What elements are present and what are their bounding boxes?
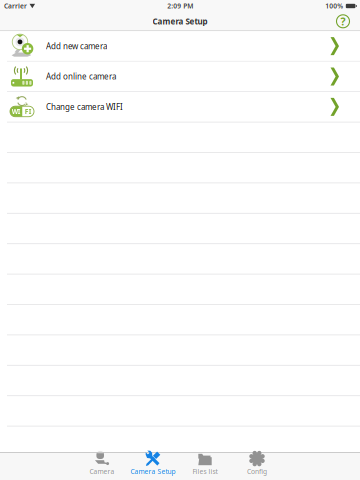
button[interactable]: Files list xyxy=(179,453,231,480)
staticText: 100% xyxy=(325,2,343,10)
button[interactable]: Help xyxy=(333,12,353,31)
button[interactable]: Camera xyxy=(77,453,127,480)
staticText: Files list xyxy=(192,467,217,476)
staticText: Config xyxy=(247,467,267,476)
staticText: FI xyxy=(25,107,32,116)
staticText: ? xyxy=(340,14,345,28)
button[interactable]: Camera Setup xyxy=(127,453,179,480)
staticText: WI xyxy=(12,107,21,116)
button[interactable]: Config xyxy=(231,453,283,480)
button[interactable]: WI xyxy=(0,92,360,122)
staticText: Change camera WIFI xyxy=(46,102,123,112)
staticText: Carrier xyxy=(4,2,27,10)
staticText: Camera Setup xyxy=(152,16,207,27)
button[interactable]: Add new camera xyxy=(0,31,360,62)
staticText: Camera Setup xyxy=(130,467,175,476)
staticText: Add new camera xyxy=(46,41,107,51)
button[interactable]: Add online camera xyxy=(0,62,360,92)
staticText: 2:09 PM xyxy=(167,2,193,10)
staticText: Add online camera xyxy=(46,71,116,82)
staticText: Camera xyxy=(89,467,114,476)
